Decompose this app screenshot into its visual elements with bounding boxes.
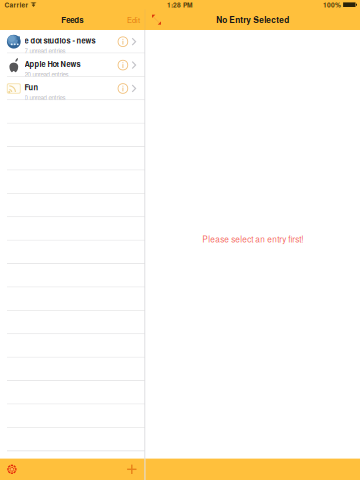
staticText: 1:28 PM: [167, 0, 193, 9]
staticText: No Entry Selected: [216, 14, 289, 26]
staticText: Feeds: [61, 14, 83, 25]
button[interactable]: Settings: [4, 461, 20, 477]
button[interactable]: Add feed: [124, 461, 140, 477]
button[interactable]: Apple Hot News: [0, 53, 145, 77]
staticText: e dot studios - news: [25, 35, 96, 46]
staticText: 7 unread entries: [25, 46, 66, 55]
button[interactable]: e dot studios - news: [0, 30, 145, 53]
button[interactable]: Edit: [125, 12, 142, 27]
staticText: Apple Hot News: [25, 59, 81, 69]
staticText: 0 unread entries: [25, 93, 66, 102]
staticText: Fun: [25, 82, 39, 93]
staticText: 100%: [323, 0, 341, 9]
staticText: 20 unread entries: [25, 70, 69, 79]
staticText: Please select an entry first!: [202, 233, 303, 245]
staticText: Edit: [127, 14, 140, 25]
staticText: Carrier: [4, 0, 28, 9]
button[interactable]: Fun: [0, 77, 145, 100]
button[interactable]: Expand detail view: [145, 12, 164, 27]
